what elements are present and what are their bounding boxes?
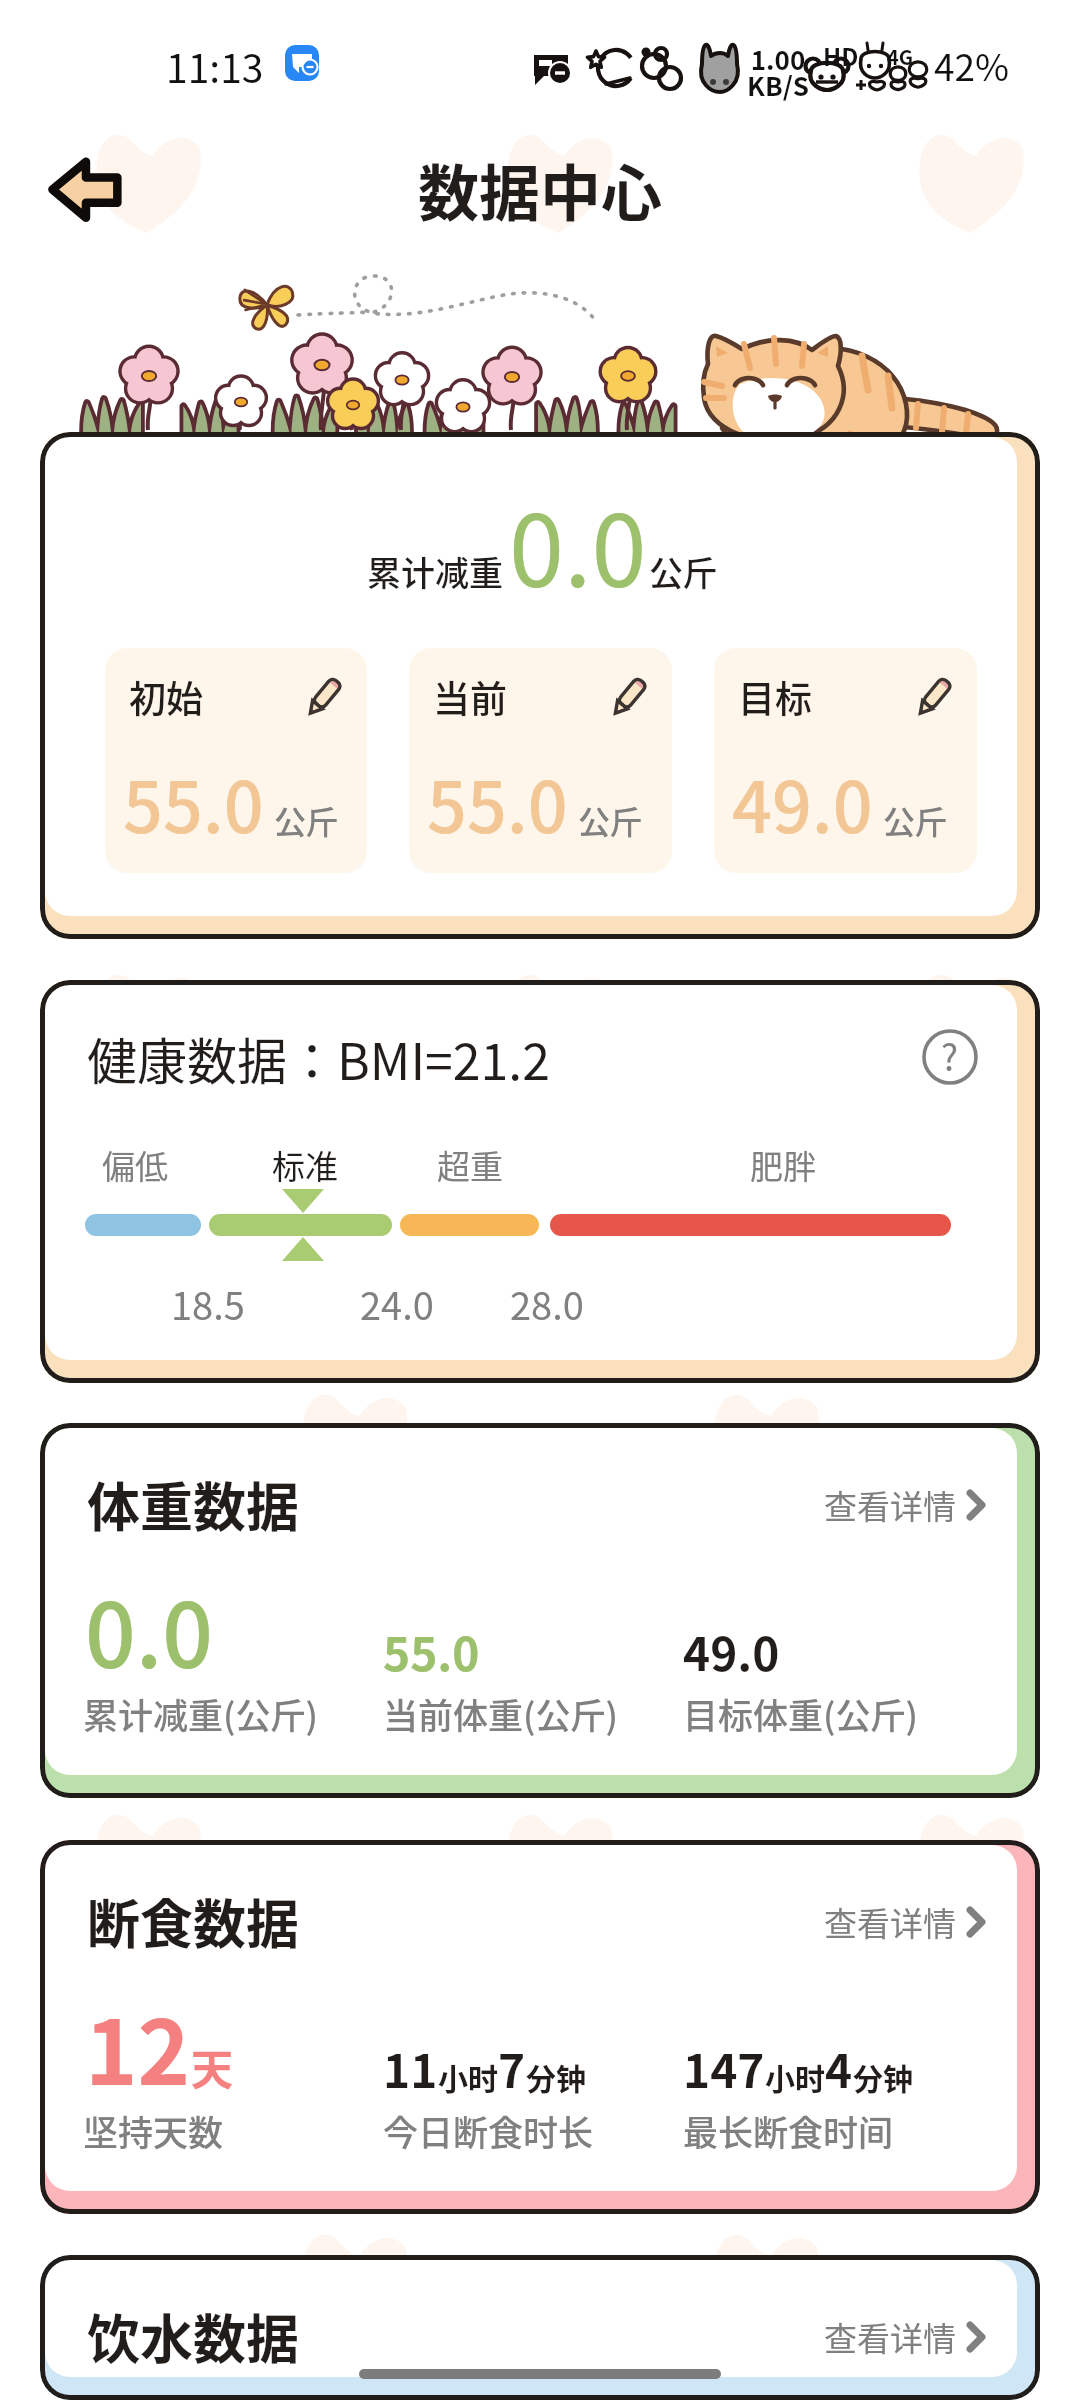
staticText: 28.0 [510,1276,584,1331]
staticText: 55.0 [427,752,568,853]
staticText: 147 [683,2035,765,2102]
staticText: 目标体重(公斤) [683,1688,918,1739]
staticText: 11:13 [166,38,264,94]
staticText: 公斤 [274,797,339,843]
staticText: 查看详情 [824,1481,956,1529]
staticText: 18.5 [171,1276,245,1331]
button[interactable]: 查看详情 [818,1892,991,1952]
staticText: ? [941,1029,959,1081]
staticText: 查看详情 [824,2313,956,2361]
staticText: 天 [191,2036,234,2097]
button[interactable]: 查看详情 [818,1475,991,1535]
staticText: 最长断食时间 [683,2105,894,2156]
staticText: 数据中心 [418,145,663,233]
staticText: 断食数据 [87,1883,299,1960]
button[interactable]: Help [922,1029,978,1085]
staticText: 49.0 [683,1618,780,1685]
staticText: 55.0 [123,752,264,853]
button[interactable]: 查看详情 [818,2307,991,2367]
staticText: 当前体重(公斤) [383,1688,618,1739]
staticText: 饮水数据 [87,2298,299,2375]
staticText: 小时 [438,2055,498,2098]
staticText: 初始 [129,670,203,724]
staticText: 今日断食时长 [383,2105,594,2156]
staticText: 分钟 [853,2055,913,2098]
staticText: 目标 [738,670,812,724]
staticText: 公斤 [578,797,643,843]
staticText: 0.0 [509,472,647,615]
staticText: 健康数据：BMI=21.2 [87,1022,550,1094]
staticText: 24.0 [360,1276,434,1331]
staticText: 小时 [765,2055,825,2098]
staticText: 0.0 [85,1565,213,1694]
staticText: 查看详情 [824,1898,956,1946]
staticText: 49.0 [732,752,873,853]
button[interactable]: 目标 [714,648,977,873]
staticText: 体重数据 [87,1466,299,1543]
staticText: 4G [887,42,914,71]
staticText: 1.00 KB/S [747,40,809,103]
staticText: 当前 [433,670,507,724]
staticText: 超重 [437,1141,503,1189]
staticText: 55.0 [383,1618,480,1685]
button[interactable]: 初始 [105,648,367,873]
staticText: 标准 [272,1141,338,1189]
staticText: 11 [383,2035,438,2102]
staticText: 分钟 [526,2055,586,2098]
staticText: 偏低 [102,1141,168,1189]
staticText: 7 [498,2035,526,2102]
staticText: 坚持天数 [83,2105,224,2156]
staticText: 12 [85,1982,191,2111]
staticText: 4 [825,2035,853,2102]
staticText: 42% [934,38,1010,92]
button[interactable]: 当前 [409,648,672,873]
staticText: HD [823,38,859,73]
button[interactable]: Back [48,158,121,221]
staticText: 累计减重 [367,547,503,596]
staticText: 累计减重(公斤) [83,1688,318,1739]
staticText: 公斤 [883,797,948,843]
staticText: 肥胖 [750,1141,816,1189]
staticText: 公斤 [649,547,717,596]
